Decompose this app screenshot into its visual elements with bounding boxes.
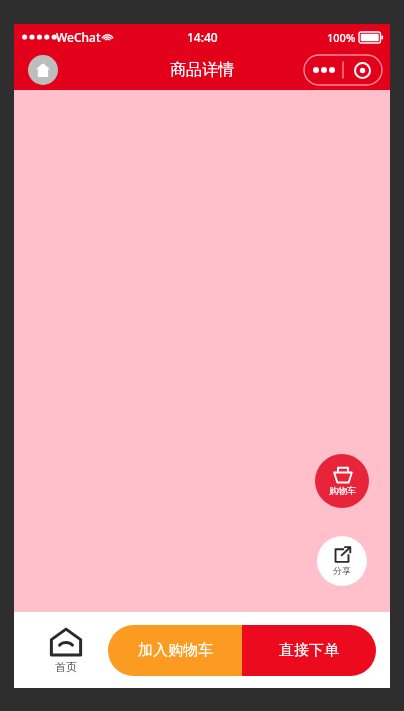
staticText: 商品详情: [170, 60, 234, 80]
button[interactable]: Home: [28, 55, 58, 85]
staticText: 购物车: [329, 485, 356, 496]
staticText: 加入购物车: [138, 641, 213, 660]
staticText: 分享: [333, 565, 351, 576]
staticText: 首页: [55, 660, 77, 674]
button[interactable]: Close: [343, 55, 382, 85]
button[interactable]: 首页: [38, 627, 94, 674]
button[interactable]: 加入购物车: [108, 625, 242, 676]
staticText: 100%: [327, 30, 356, 45]
button[interactable]: 分享: [317, 536, 367, 586]
staticText: 直接下单: [279, 641, 339, 660]
staticText: WeChat: [56, 29, 101, 45]
button[interactable]: More: [304, 55, 343, 85]
button[interactable]: 购物车: [315, 454, 369, 508]
button[interactable]: 直接下单: [242, 625, 376, 676]
staticText: 14:40: [187, 29, 218, 45]
